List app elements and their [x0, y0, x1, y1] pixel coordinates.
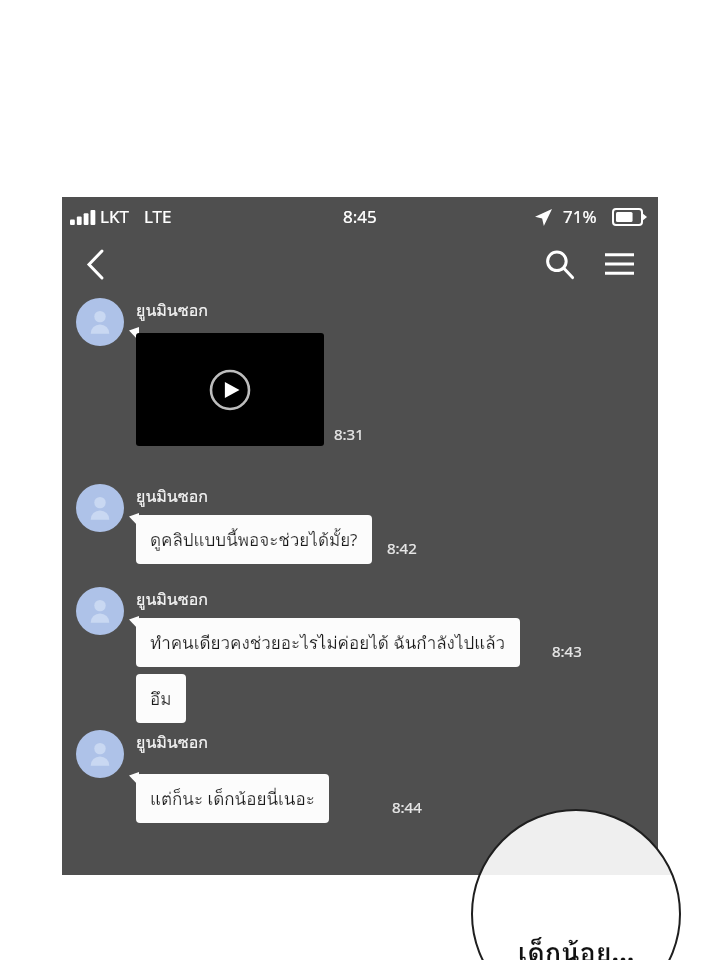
button[interactable]: ทำคนเดียวคงช่วยอะไรไม่ค่อยได้ ฉันกำลังไป…	[136, 618, 520, 667]
staticText: ยูนมินซอก	[136, 587, 208, 612]
staticText: 8:44	[392, 797, 422, 817]
staticText: 71%	[563, 205, 597, 228]
button[interactable]	[76, 730, 124, 778]
staticText: LKT	[100, 205, 129, 228]
staticText: 8:42	[387, 538, 417, 558]
button[interactable]: ดูคลิปแบบนี้พอจะช่วยได้มั้ย?	[136, 515, 372, 564]
button[interactable]: Search	[536, 241, 582, 287]
button[interactable]	[76, 587, 124, 635]
staticText: อึม	[150, 685, 172, 712]
staticText: ยูนมินซอก	[136, 298, 208, 323]
button[interactable]	[136, 333, 324, 446]
staticText: LTE	[144, 205, 172, 228]
button[interactable]: แต่ก็นะ เด็กน้อยนี่เนอะ	[136, 774, 329, 823]
staticText: ดูคลิปแบบนี้พอจะช่วยได้มั้ย?	[150, 526, 358, 553]
staticText: ยูนมินซอก	[136, 484, 208, 509]
button[interactable]: เด็กน้อย...	[472, 810, 680, 960]
staticText: ทำคนเดียวคงช่วยอะไรไม่ค่อยได้ ฉันกำลังไป…	[150, 629, 506, 656]
staticText: 8:43	[552, 641, 582, 661]
staticText: 8:31	[334, 424, 364, 444]
staticText: ยูนมินซอก	[136, 730, 208, 755]
staticText: เด็กน้อย...	[518, 931, 635, 960]
button[interactable]	[76, 484, 124, 532]
staticText: แต่ก็นะ เด็กน้อยนี่เนอะ	[150, 785, 315, 812]
button[interactable]: อึม	[136, 674, 186, 723]
button[interactable]	[76, 298, 124, 346]
button[interactable]: Back	[72, 241, 118, 287]
button[interactable]: Menu	[596, 241, 642, 287]
staticText: 8:45	[343, 205, 377, 228]
